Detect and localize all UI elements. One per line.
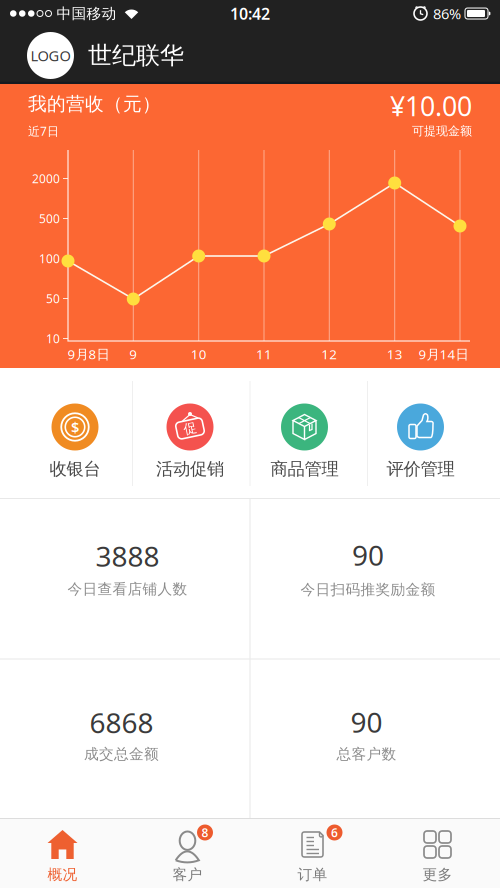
staticText: 活动促销 — [156, 458, 224, 480]
staticText: 总客户数 — [336, 745, 396, 763]
staticText: 今日扫码推奖励金额 — [300, 580, 435, 598]
staticText: 3888 — [95, 537, 159, 575]
staticText: 90 — [352, 536, 384, 574]
staticText: 成交总金额 — [84, 745, 159, 763]
button[interactable]: 评价管理 — [367, 368, 485, 499]
staticText: 今日查看店铺人数 — [67, 580, 187, 598]
staticText: 50 — [46, 290, 60, 306]
button[interactable]: 商家 Logo — [27, 32, 74, 79]
staticText: 更多 — [422, 865, 452, 883]
staticText: 9 — [129, 345, 137, 363]
button[interactable]: 订单 — [250, 818, 375, 888]
staticText: 订单 — [297, 865, 327, 883]
button[interactable]: 3888 — [0, 499, 250, 659]
staticText: 我的营收（元） — [28, 92, 161, 115]
staticText: 8 — [201, 824, 208, 840]
staticText: 10 — [191, 345, 207, 363]
staticText: 11 — [256, 345, 272, 363]
button[interactable]: $ — [15, 368, 132, 499]
button[interactable]: 90 — [250, 658, 500, 818]
staticText: 12 — [321, 345, 337, 363]
staticText: 90 — [350, 703, 382, 741]
button[interactable]: 90 — [250, 499, 500, 659]
button[interactable]: 更多 — [375, 818, 500, 888]
staticText: $ — [71, 417, 79, 437]
staticText: 100 — [39, 250, 60, 266]
button[interactable]: 概况 — [0, 818, 125, 888]
staticText: 世纪联华 — [88, 41, 184, 70]
staticText: 收银台 — [49, 458, 100, 480]
button[interactable]: 客户 — [125, 818, 250, 888]
staticText: 9月8日 — [67, 345, 109, 363]
staticText: 中国移动 — [56, 4, 116, 22]
staticText: 客户 — [172, 865, 202, 883]
staticText: 10:42 — [230, 3, 270, 24]
staticText: 10 — [46, 330, 60, 346]
button[interactable]: 商品管理 — [250, 368, 367, 499]
staticText: 13 — [387, 345, 403, 363]
staticText: 商品管理 — [270, 458, 338, 480]
staticText: 86% — [433, 4, 461, 23]
staticText: 6868 — [89, 704, 153, 741]
staticText: 2000 — [32, 170, 60, 186]
staticText: 9月14日 — [418, 345, 468, 363]
staticText: LOGO — [30, 46, 70, 65]
button[interactable]: 促 — [132, 368, 250, 499]
staticText: 评价管理 — [386, 458, 454, 480]
staticText: 500 — [39, 210, 60, 226]
button[interactable]: 6868 — [0, 658, 250, 818]
staticText: 概况 — [47, 865, 77, 883]
staticText: 近7日 — [28, 123, 59, 139]
staticText: 促 — [183, 420, 196, 437]
staticText: 可提现金额 — [412, 124, 472, 138]
staticText: 6 — [331, 824, 338, 840]
staticText: ¥10.00 — [390, 88, 472, 124]
